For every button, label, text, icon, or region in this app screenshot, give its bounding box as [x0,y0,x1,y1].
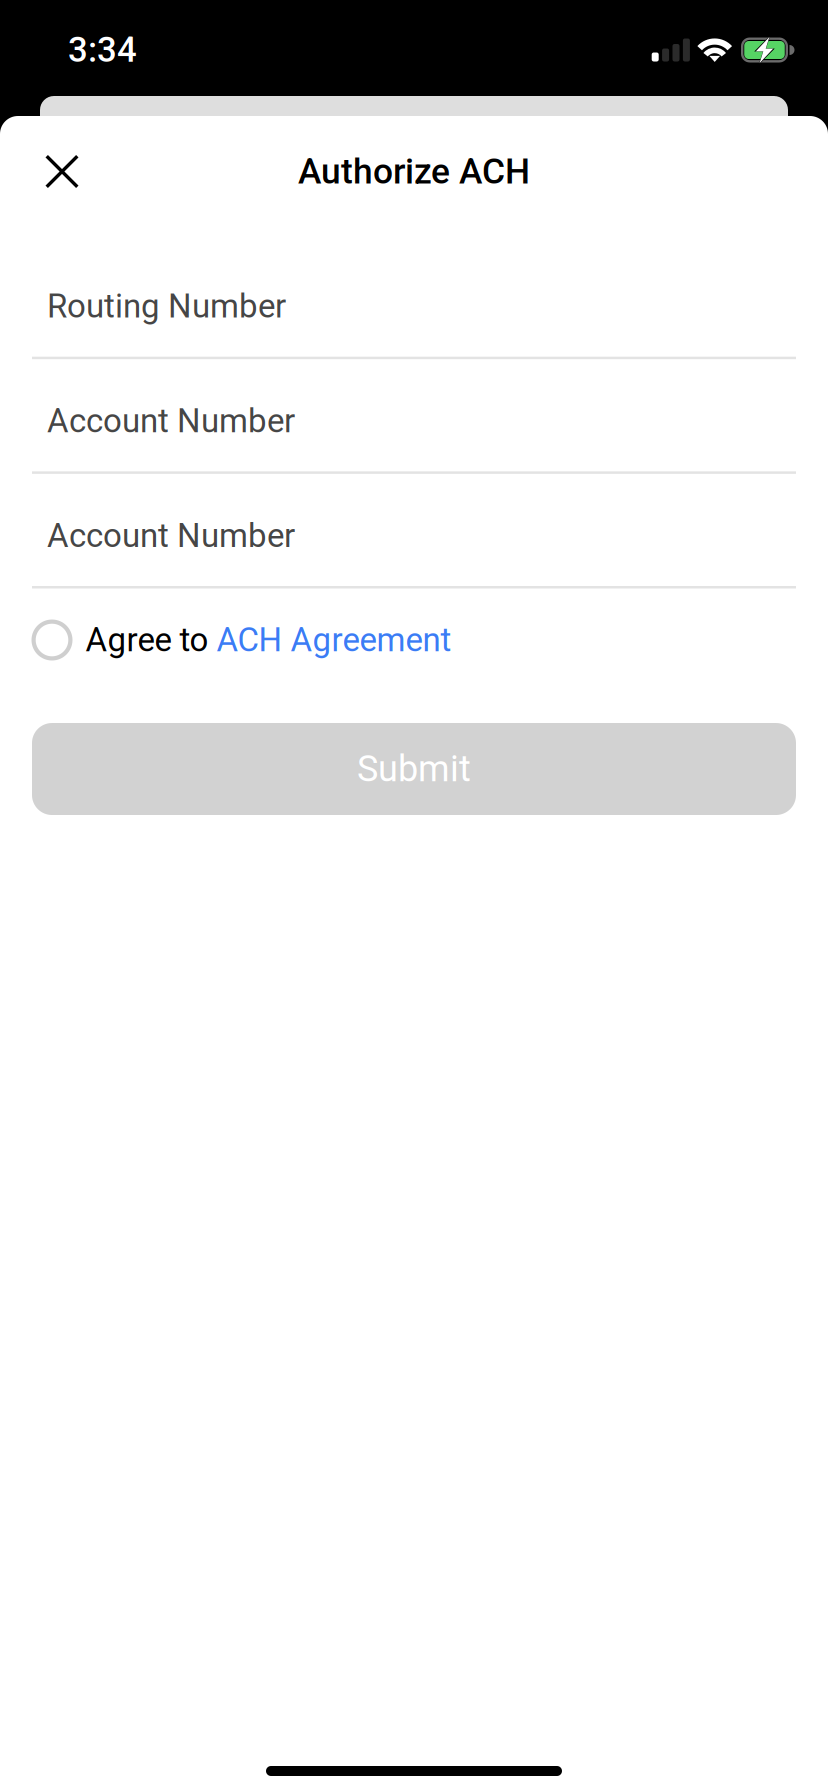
button[interactable]: Submit [32,723,796,815]
staticText: Account Number [47,516,295,555]
staticText: Submit [357,748,471,790]
button[interactable]: Close [23,132,101,210]
button[interactable]: Agree to [0,588,828,723]
button[interactable]: Account Number [0,359,828,474]
button[interactable]: Routing Number [0,244,828,359]
staticText: Account Number [47,402,295,440]
staticText: ACH Agreement [216,621,451,659]
staticText: Agree to [85,621,216,659]
button[interactable]: Account Number [0,474,828,588]
staticText: Routing Number [47,287,286,326]
staticText: 3:34 [68,30,137,70]
staticText: Authorize ACH [298,151,530,192]
